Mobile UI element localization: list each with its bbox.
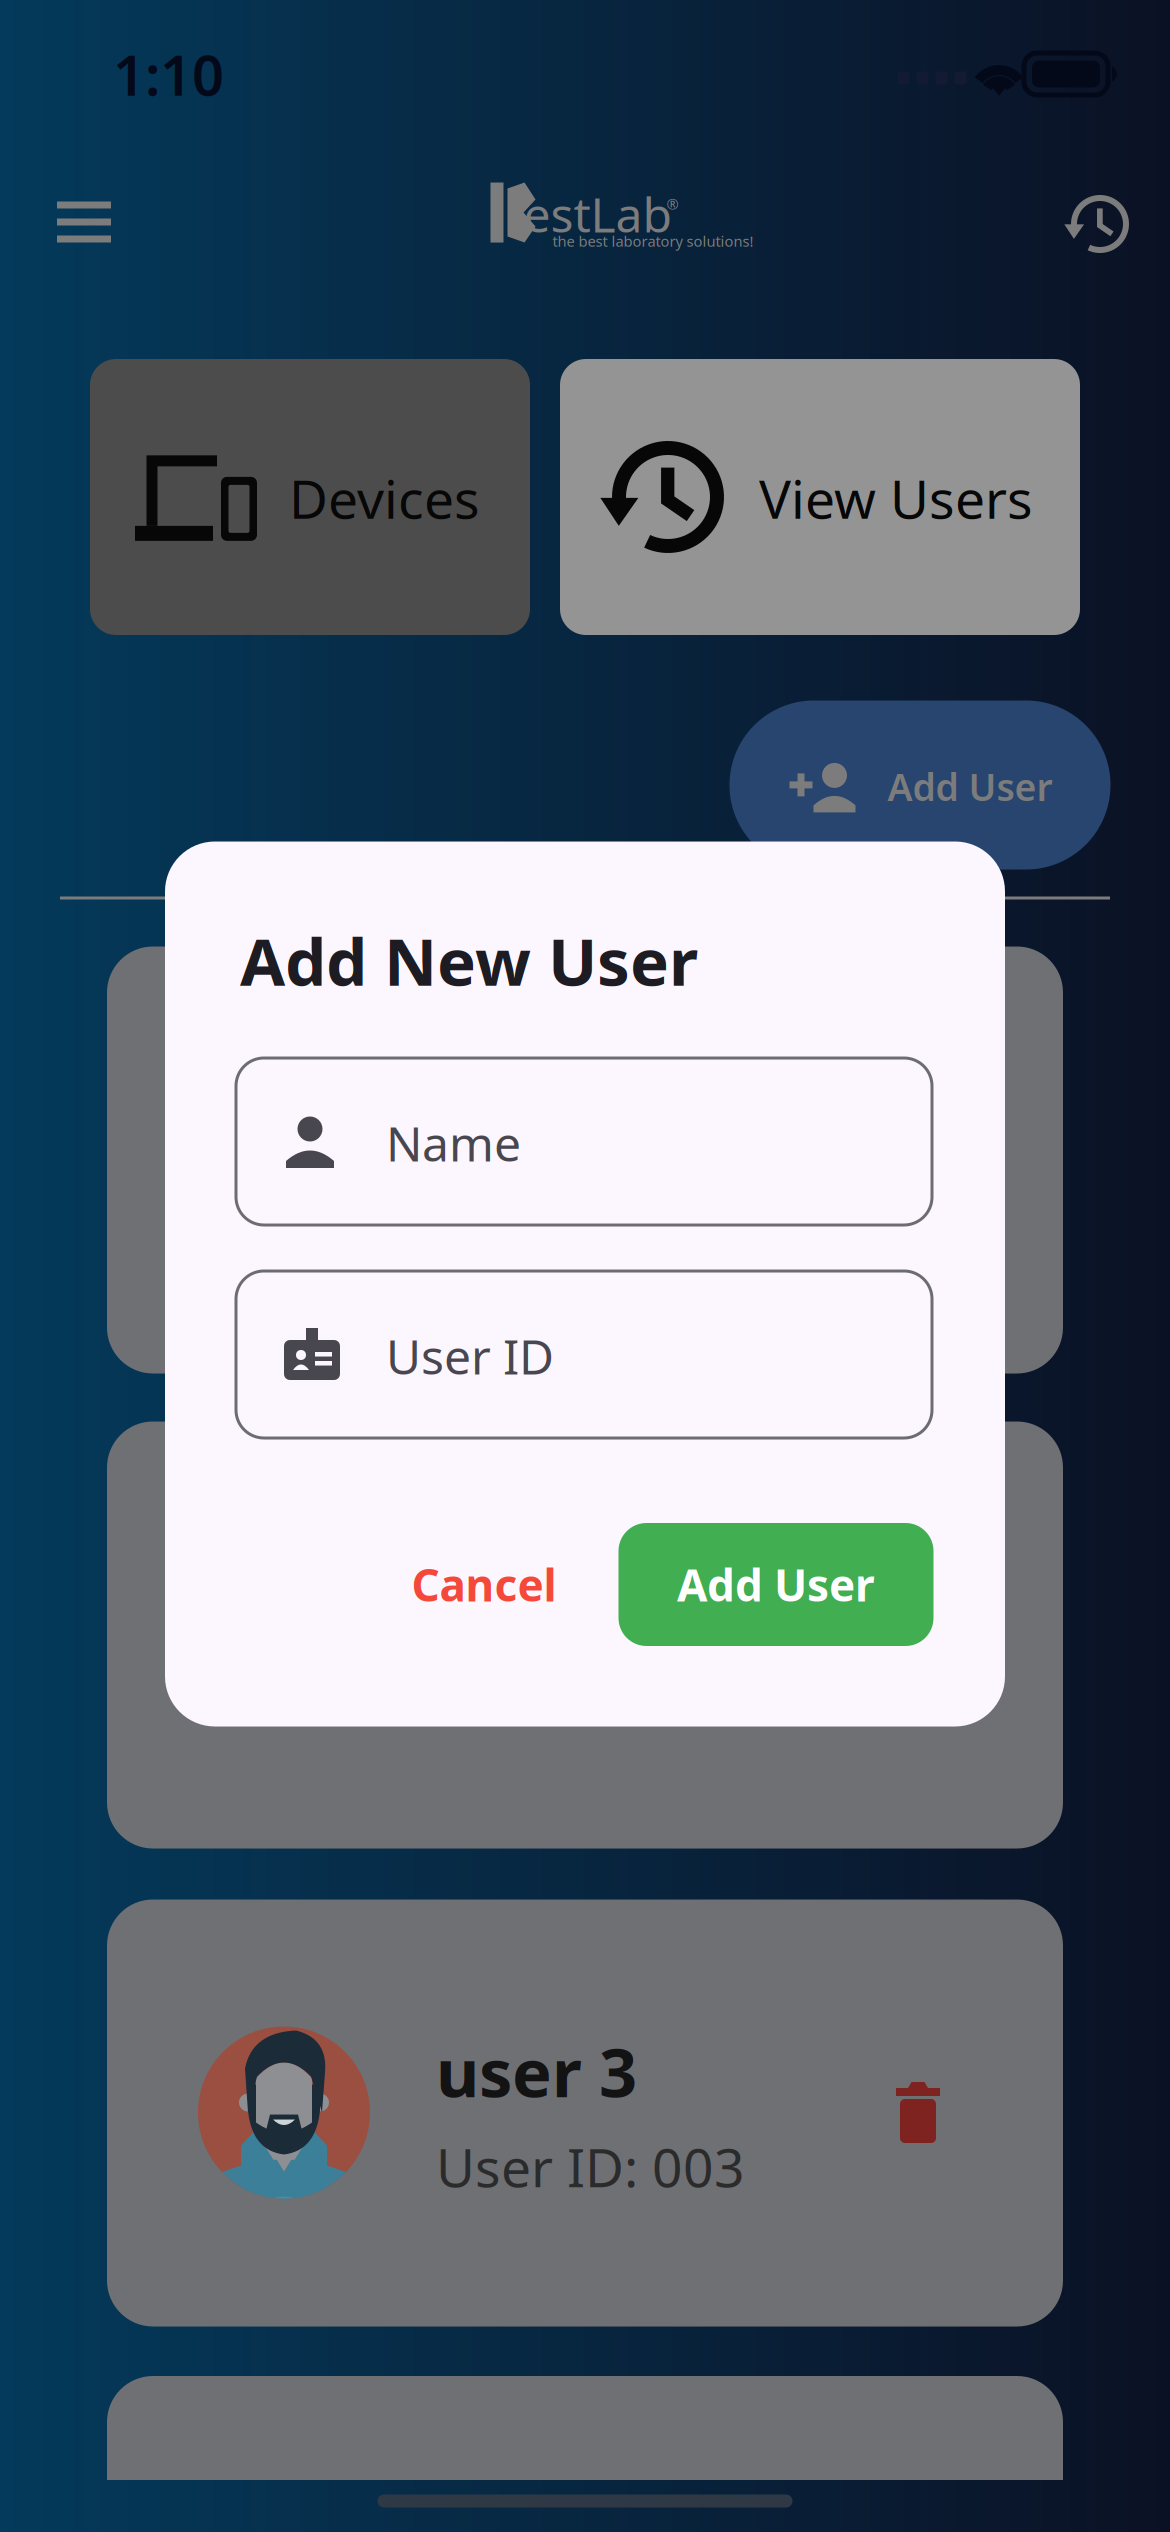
staticText: User ID: [386, 1324, 554, 1388]
staticText: ®: [666, 194, 678, 214]
staticText: user 3: [436, 2027, 637, 2116]
staticText: View Users: [759, 463, 1033, 533]
button[interactable]: User ID: [236, 1271, 932, 1438]
staticText: Devices: [289, 463, 480, 533]
staticText: User ID: 003: [436, 2131, 745, 2202]
staticText: Add User: [677, 1555, 875, 1614]
button[interactable]: Menu: [24, 167, 144, 277]
staticText: estLab: [523, 182, 672, 246]
staticText: Cancel: [411, 1555, 556, 1614]
button[interactable]: Add User: [729, 700, 1110, 869]
staticText: Add User: [887, 762, 1052, 811]
button[interactable]: Add User: [618, 1523, 933, 1646]
staticText: Add New User: [240, 917, 698, 1004]
button[interactable]: Cancel: [384, 1523, 584, 1646]
button[interactable]: Delete user 3: [858, 2052, 978, 2172]
staticText: 1:10: [113, 37, 224, 111]
button[interactable]: History: [1045, 169, 1155, 279]
button[interactable]: Name: [236, 1058, 932, 1225]
staticText: Name: [386, 1111, 521, 1175]
button[interactable]: View Users: [560, 359, 1080, 635]
button[interactable]: Devices: [90, 359, 530, 635]
staticText: the best laboratory solutions!: [552, 231, 753, 251]
